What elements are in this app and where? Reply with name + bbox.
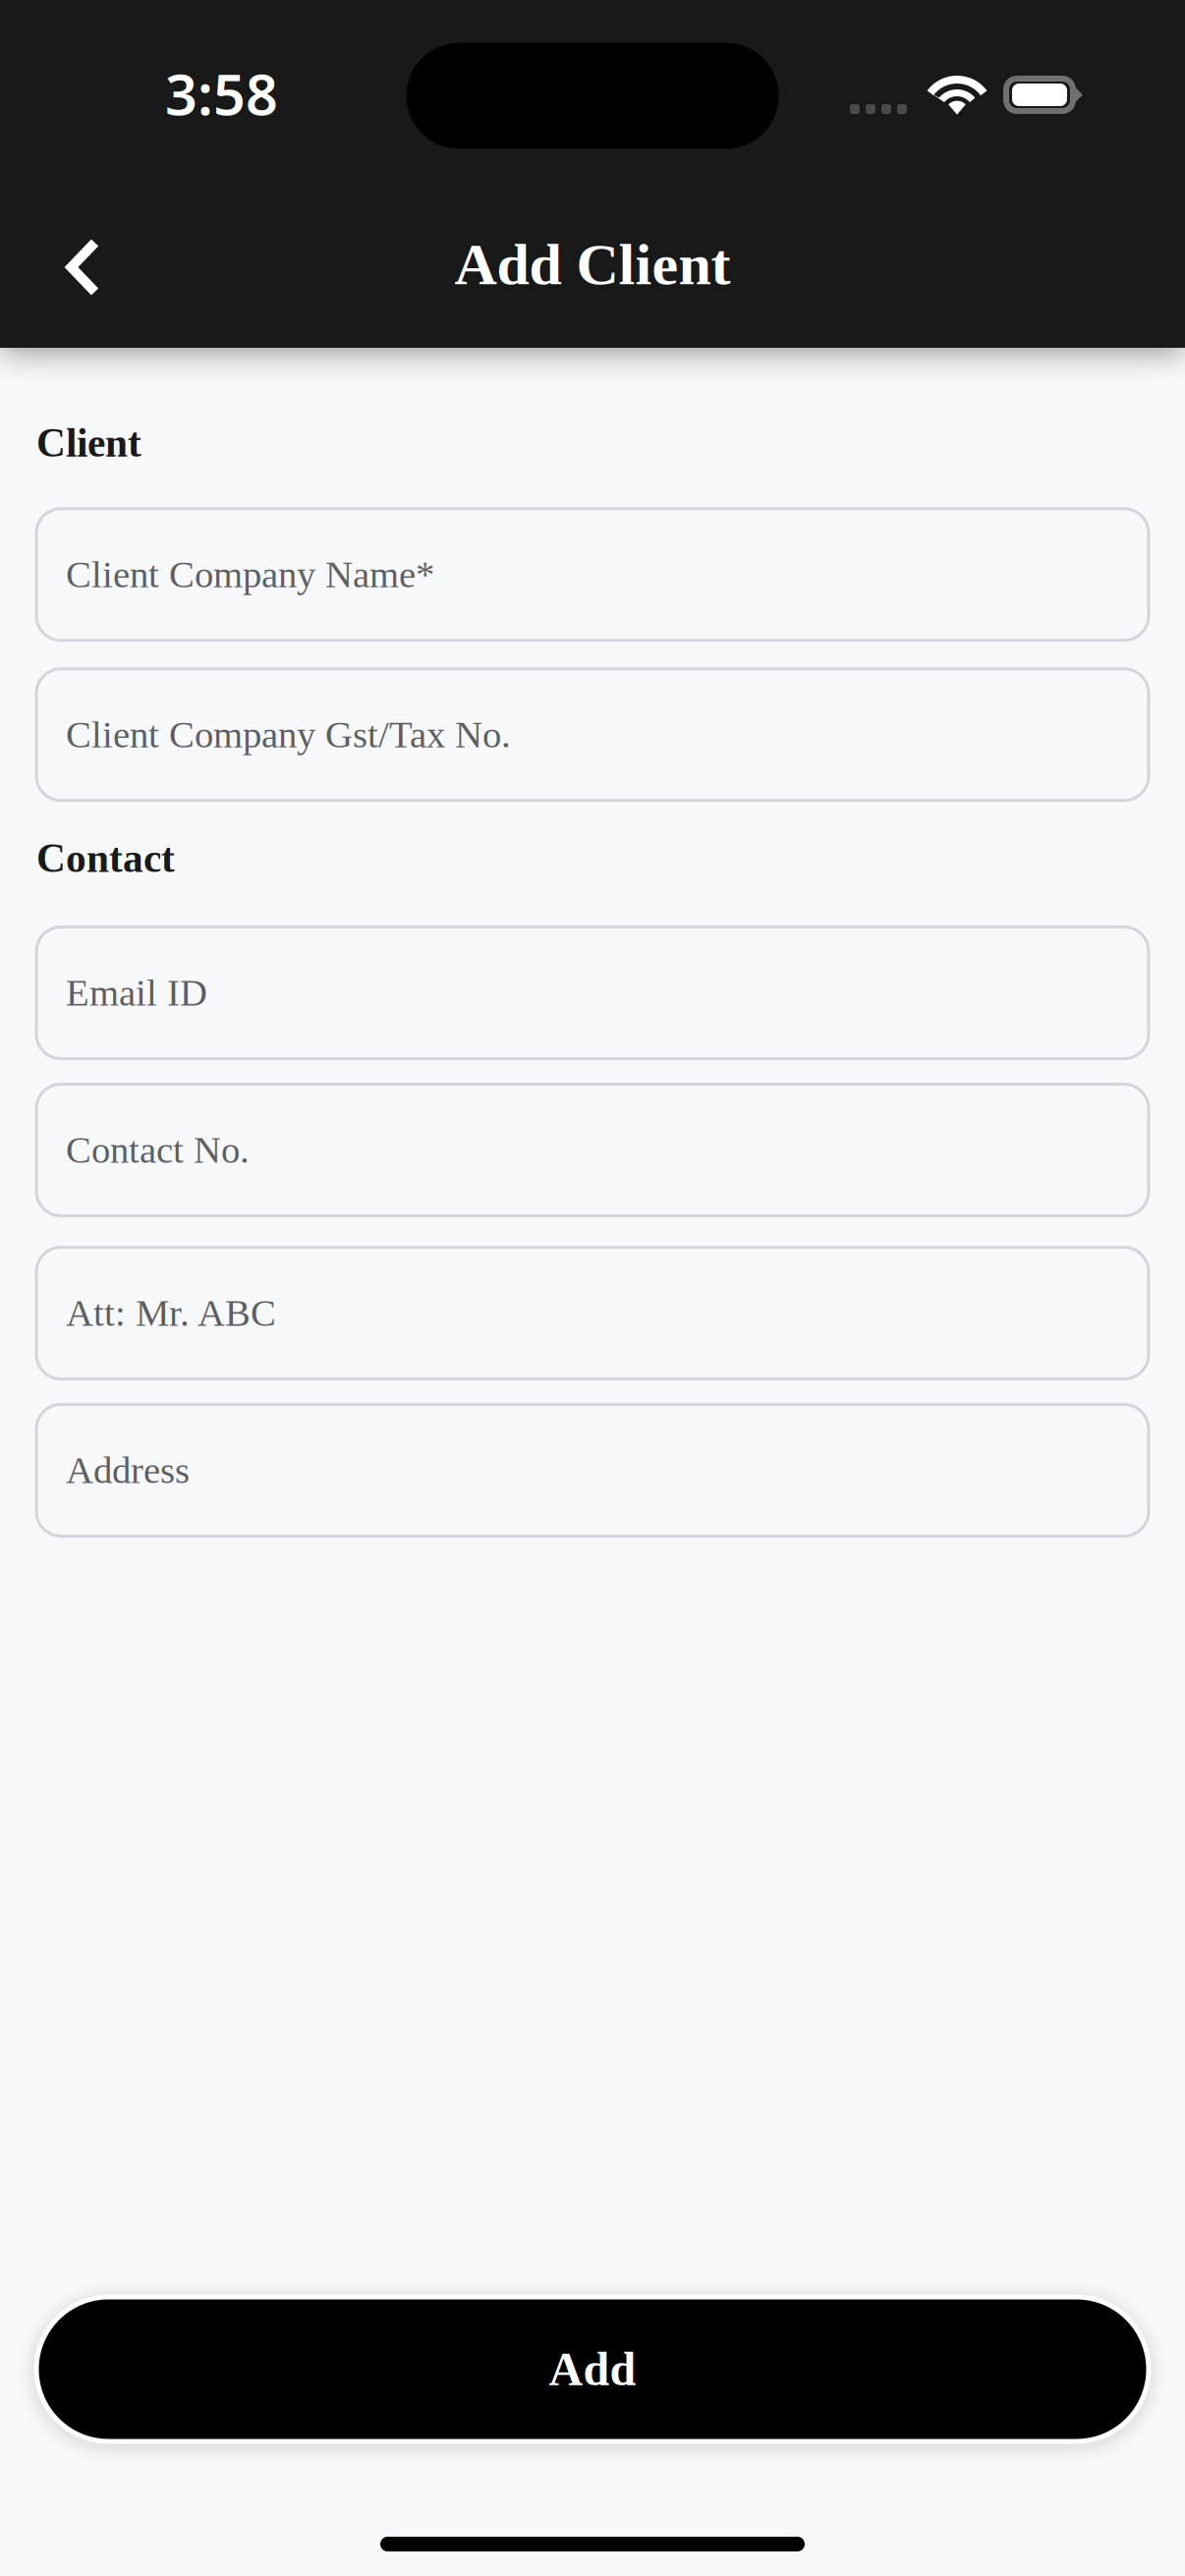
button[interactable]: Contact No. — [36, 1084, 1149, 1216]
staticText: 3:58 — [165, 56, 278, 131]
staticText: Add — [549, 2343, 636, 2395]
button[interactable]: Client Company Gst/Tax No. — [36, 669, 1149, 801]
button[interactable]: Back — [36, 220, 131, 314]
staticText: Add Client — [454, 232, 731, 297]
button[interactable]: Add — [36, 2297, 1149, 2441]
staticText: Client — [36, 420, 141, 465]
button[interactable]: Email ID — [36, 927, 1149, 1059]
staticText: Contact — [36, 836, 175, 881]
staticText: Email ID — [66, 972, 207, 1014]
button[interactable]: Att: Mr. ABC — [36, 1247, 1149, 1379]
staticText: Client Company Gst/Tax No. — [66, 714, 511, 756]
staticText: Client Company Name* — [66, 554, 434, 596]
staticText: Att: Mr. ABC — [66, 1292, 276, 1334]
staticText: Contact No. — [66, 1129, 250, 1171]
button[interactable]: Address — [36, 1404, 1149, 1536]
button[interactable]: Client Company Name* — [36, 509, 1149, 640]
staticText: Address — [66, 1449, 190, 1491]
